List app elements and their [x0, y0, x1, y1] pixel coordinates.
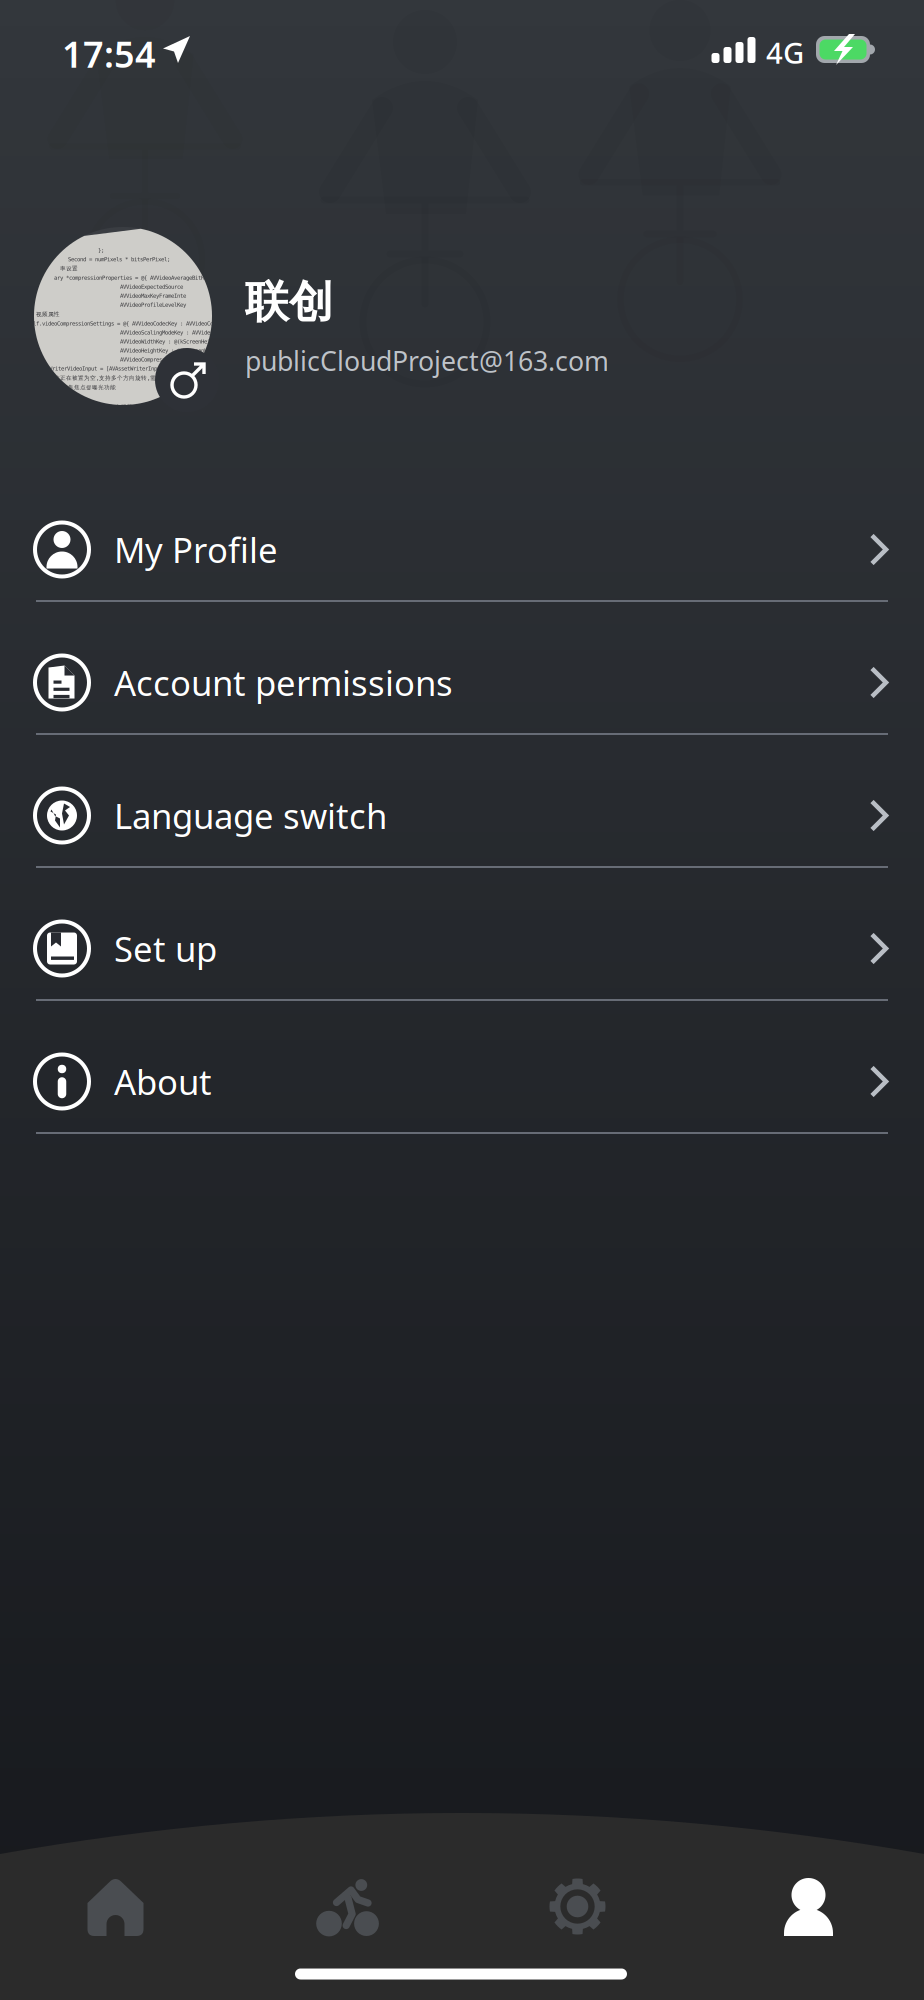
button[interactable]: About [0, 1031, 924, 1164]
staticText: 操作正在被置为空,支持多个方向旋转,需要录制的小视频的 [48, 374, 204, 381]
staticText: 视频属性 [36, 311, 60, 318]
staticText: AVVideoMaxKeyFrameInte [120, 293, 186, 299]
button[interactable]: Language switch [0, 765, 924, 898]
staticText: 4G [766, 33, 804, 72]
staticText: 加小视频的支持,现在小视频才从 [58, 403, 145, 410]
button[interactable]: Settings [462, 1878, 693, 1998]
staticText: Language switch [114, 792, 387, 838]
staticText: elf.videoCompressionSettings = @{ AVVide… [30, 320, 225, 327]
button[interactable]: My Profile [0, 499, 924, 632]
button[interactable]: Rides [231, 1878, 462, 1998]
staticText: AVVideoCompressionPropertiesKey [120, 356, 213, 363]
staticText: My Profile [114, 526, 278, 572]
staticText: AVVideoWidthKey : @(kScreenHeig [120, 338, 213, 345]
button[interactable]: Set up [0, 898, 924, 1031]
staticText: AVVideoScalingModeKey : AVVideo [120, 329, 213, 336]
staticText: ary *compressionProperties = @{ AVVideoA… [54, 275, 210, 281]
staticText: AVVideoProfileLevelKey [120, 302, 186, 308]
staticText: Set up [114, 925, 217, 971]
staticText: About [114, 1058, 212, 1104]
staticText: Second = numPixels * bitsPerPixel; [68, 256, 170, 262]
staticText: Account permissions [114, 659, 453, 705]
button[interactable]: Account permissions [0, 632, 924, 765]
button[interactable]: Profile [693, 1878, 924, 1998]
staticText: AVVideoHeightKey : @(kScreenWid [120, 347, 213, 354]
staticText: 17:54 [62, 30, 156, 78]
staticText: publicCloudProject@163.com [245, 343, 609, 378]
staticText: AVVideoExpectedSource [120, 284, 183, 290]
button[interactable]: Home [0, 1878, 231, 1998]
staticText: 联创 [245, 275, 333, 329]
staticText: AssetWriterVideoInput = [AVAssetWriterIn… [34, 365, 226, 372]
staticText: }; [98, 247, 104, 253]
staticText: 率设置 [60, 265, 78, 272]
staticText: 针对收集焦点提曝光功能 [50, 384, 116, 391]
